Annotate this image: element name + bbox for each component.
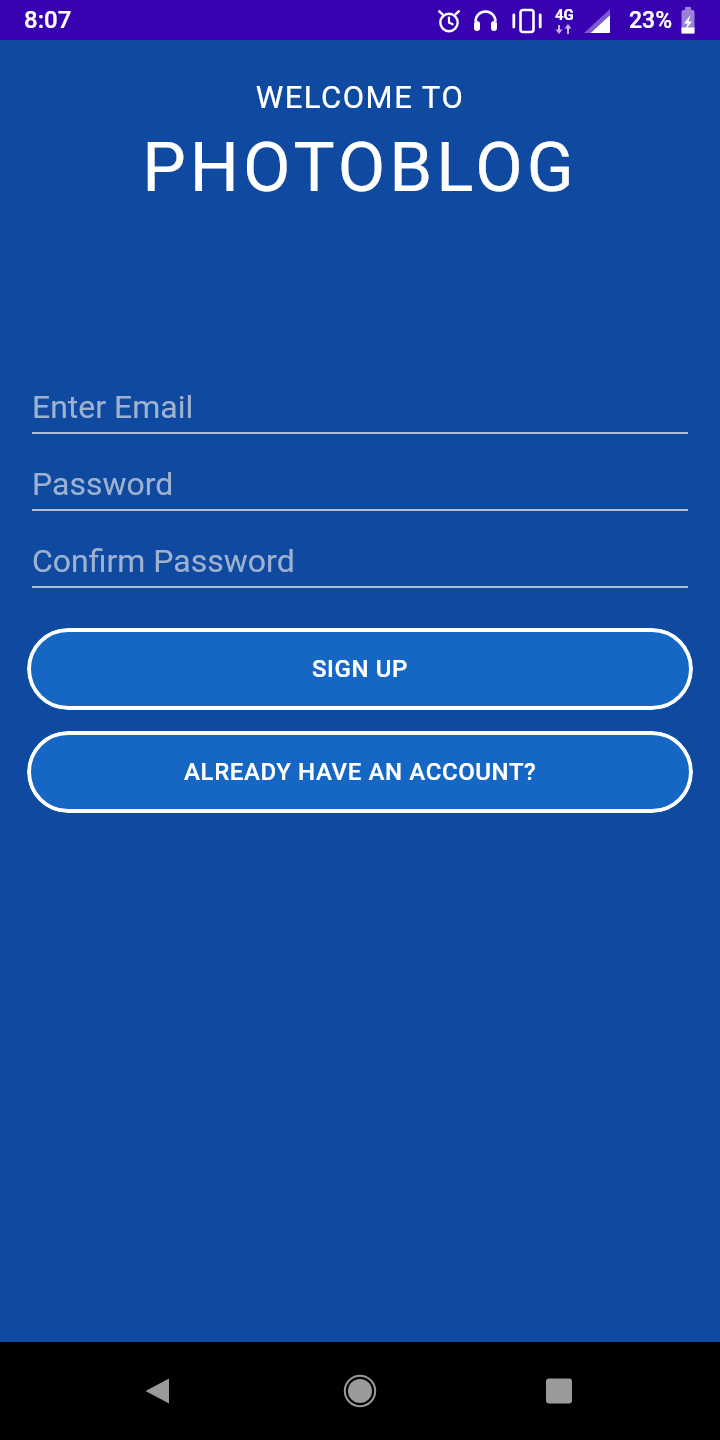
button[interactable]: ALREADY HAVE AN ACCOUNT? <box>27 731 693 813</box>
button[interactable] <box>109 1342 207 1440</box>
staticText: 8:07 <box>24 6 72 34</box>
button[interactable]: SIGN UP <box>27 628 693 710</box>
button[interactable]: Enter Email <box>32 388 688 434</box>
staticText: ALREADY HAVE AN ACCOUNT? <box>184 758 537 786</box>
button[interactable]: Password <box>32 465 688 511</box>
staticText: WELCOME TO <box>0 79 720 115</box>
button[interactable]: Confirm Password <box>32 542 688 588</box>
staticText: PHOTOBLOG <box>0 127 720 208</box>
button[interactable] <box>311 1342 409 1440</box>
staticText: Enter Email <box>32 388 194 426</box>
staticText: Confirm Password <box>32 542 295 580</box>
button[interactable] <box>510 1342 608 1440</box>
staticText: 4G <box>555 6 574 24</box>
staticText: SIGN UP <box>312 655 408 683</box>
staticText: Password <box>32 465 174 503</box>
staticText: 23% <box>629 7 673 34</box>
